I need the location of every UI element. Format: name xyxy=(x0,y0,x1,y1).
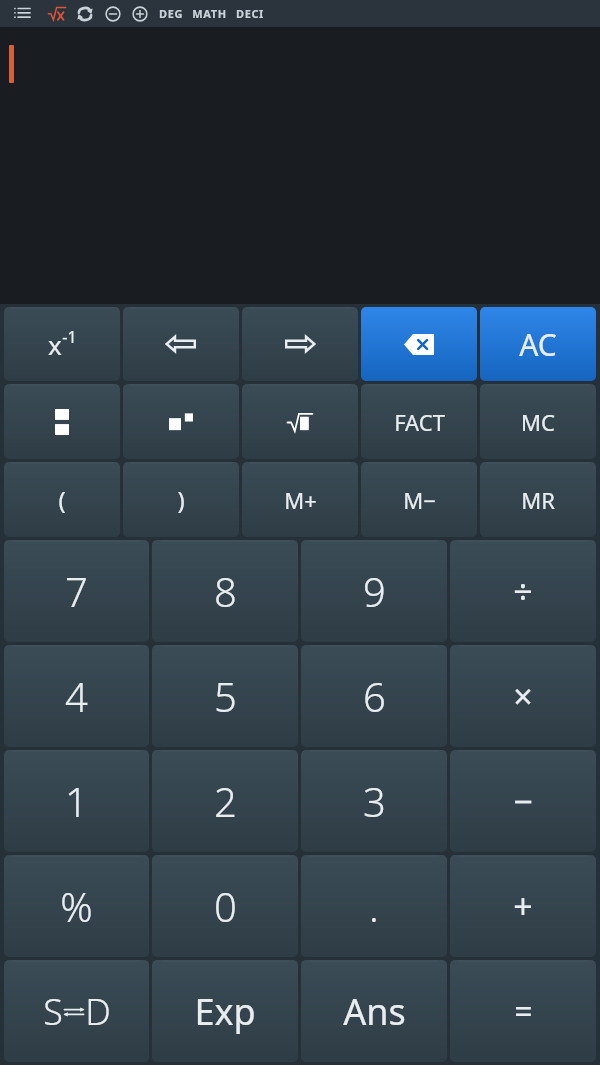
staticText: M+ xyxy=(284,485,317,515)
button[interactable]: Move cursor right xyxy=(242,307,358,381)
staticText: = xyxy=(514,989,533,1033)
button[interactable]: % xyxy=(4,855,149,957)
staticText: FACT xyxy=(394,407,445,437)
button[interactable]: Menu xyxy=(8,0,36,27)
button[interactable]: 0 xyxy=(152,855,298,957)
button[interactable]: Root xyxy=(242,384,358,459)
button[interactable]: M− xyxy=(361,462,477,537)
staticText: 6 xyxy=(363,669,386,723)
button[interactable]: DECI xyxy=(236,0,264,27)
button[interactable]: FACT xyxy=(361,384,477,459)
staticText: 2 xyxy=(214,774,237,828)
staticText: MC xyxy=(521,407,555,437)
staticText: MATH xyxy=(192,6,227,21)
staticText: DEG xyxy=(159,6,183,21)
staticText: 3 xyxy=(363,774,386,828)
button[interactable]: Delete xyxy=(361,307,477,381)
button[interactable]: Fraction xyxy=(4,384,120,459)
staticText: 4 xyxy=(65,669,88,723)
button[interactable]: Exp xyxy=(152,960,298,1062)
button[interactable]: 5 xyxy=(152,645,298,747)
button[interactable]: x xyxy=(4,307,120,381)
button[interactable]: 2 xyxy=(152,750,298,852)
button[interactable]: M+ xyxy=(242,462,358,537)
button[interactable]: 8 xyxy=(152,540,298,642)
button[interactable]: MATH xyxy=(192,0,227,27)
button[interactable]: 1 xyxy=(4,750,149,852)
button[interactable]: 3 xyxy=(301,750,447,852)
staticText: × xyxy=(513,673,533,719)
button[interactable]: Swap xyxy=(72,0,98,27)
button[interactable]: = xyxy=(450,960,596,1062)
staticText: . xyxy=(369,879,379,933)
staticText: AC xyxy=(519,324,557,365)
button[interactable]: Move cursor left xyxy=(123,307,239,381)
button[interactable]: 9 xyxy=(301,540,447,642)
button[interactable]: ) xyxy=(123,462,239,537)
staticText: ) xyxy=(177,483,185,516)
staticText: 5 xyxy=(214,669,237,723)
button[interactable]: Power xyxy=(123,384,239,459)
staticText: % xyxy=(60,879,93,933)
button[interactable]: 6 xyxy=(301,645,447,747)
button[interactable]: AC xyxy=(480,307,596,381)
staticText: 7 xyxy=(65,564,88,618)
staticText: + xyxy=(513,883,533,929)
staticText: Exp xyxy=(194,987,256,1036)
button[interactable]: Ans xyxy=(301,960,447,1062)
staticText: 1 xyxy=(65,774,88,828)
button[interactable]: Decrease font size xyxy=(100,0,126,27)
staticText: 8 xyxy=(214,564,237,618)
staticText: − xyxy=(513,778,533,824)
staticText: MR xyxy=(521,485,555,515)
staticText: S xyxy=(43,987,63,1036)
button[interactable]: MR xyxy=(480,462,596,537)
button[interactable]: Standard to decimal xyxy=(4,960,149,1062)
staticText: D xyxy=(85,987,111,1036)
staticText: ÷ xyxy=(513,568,533,614)
button[interactable]: × xyxy=(450,645,596,747)
button[interactable]: Increase font size xyxy=(127,0,153,27)
button[interactable]: MC xyxy=(480,384,596,459)
staticText: DECI xyxy=(236,6,264,21)
staticText: 0 xyxy=(214,879,237,933)
button[interactable]: ( xyxy=(4,462,120,537)
button[interactable]: . xyxy=(301,855,447,957)
button[interactable]: 4 xyxy=(4,645,149,747)
staticText: 9 xyxy=(363,564,386,618)
staticText: x xyxy=(48,327,62,362)
button[interactable]: − xyxy=(450,750,596,852)
button[interactable]: Square root function xyxy=(44,0,70,27)
button[interactable]: 7 xyxy=(4,540,149,642)
staticText: Ans xyxy=(343,987,406,1036)
button[interactable]: + xyxy=(450,855,596,957)
staticText: -1 xyxy=(62,326,77,348)
staticText: M− xyxy=(403,485,436,515)
button[interactable]: ÷ xyxy=(450,540,596,642)
button[interactable]: DEG xyxy=(159,0,183,27)
staticText: ( xyxy=(58,483,66,516)
